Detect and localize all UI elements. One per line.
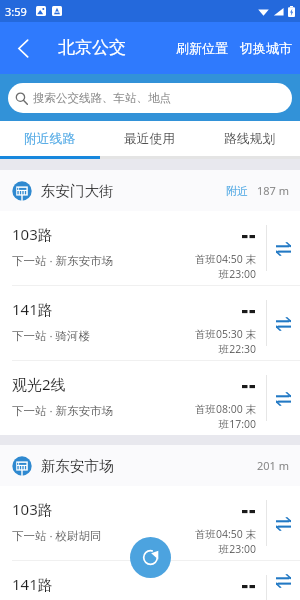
button[interactable]: 切换城市 — [234, 30, 300, 66]
staticText: 141路 — [12, 574, 53, 594]
staticText: 班22:30 — [218, 342, 256, 356]
staticText: 切换城市 — [240, 40, 292, 56]
staticText: 东安门大街 — [41, 182, 114, 200]
button[interactable]: 搜索公交线路、车站、地点 — [8, 83, 292, 113]
button[interactable]: 103路 — [0, 211, 300, 285]
button[interactable]: Switch direction — [267, 286, 300, 360]
staticText: 首班04:50 末 — [194, 527, 256, 541]
button[interactable]: 刷新位置 — [170, 30, 234, 66]
staticText: 103路 — [12, 224, 53, 244]
staticText: 附近线路 — [24, 131, 76, 147]
button[interactable]: 东安门大街 — [0, 170, 300, 211]
staticText: 首班04:50 末 — [194, 252, 256, 266]
staticText: 搜索公交线路、车站、地点 — [33, 91, 171, 105]
button[interactable]: Back — [0, 25, 46, 71]
button[interactable]: Switch direction — [267, 561, 300, 600]
staticText: 141路 — [12, 299, 53, 319]
button[interactable]: 新东安市场 — [0, 445, 300, 486]
staticText: 187 m — [257, 183, 290, 198]
staticText: 最近使用 — [124, 131, 176, 147]
button[interactable]: 103路 — [0, 486, 300, 560]
button[interactable]: Switch direction — [267, 361, 300, 435]
staticText: 班17:00 — [218, 417, 256, 431]
button[interactable]: 路线规划 — [200, 121, 300, 156]
staticText: 下一站 · 校尉胡同 — [12, 528, 102, 544]
staticText: 首班05:30 末 — [194, 327, 256, 341]
staticText: 201 m — [257, 458, 290, 473]
staticText: 班23:00 — [218, 542, 256, 556]
staticText: 下一站 · 骑河楼 — [12, 328, 91, 344]
staticText: 3:59 — [5, 4, 27, 19]
staticText: 下一站 · 新东安市场 — [12, 403, 114, 419]
button[interactable]: 最近使用 — [100, 121, 200, 156]
staticText: 首班08:00 末 — [194, 402, 256, 416]
button[interactable]: Switch direction — [267, 211, 300, 285]
staticText: 附近 — [226, 184, 248, 198]
button[interactable]: 141路 — [0, 286, 300, 360]
button[interactable]: 141路 — [0, 561, 300, 600]
staticText: 观光2线 — [12, 374, 66, 394]
button[interactable]: 附近线路 — [0, 121, 100, 156]
button[interactable]: Switch direction — [267, 486, 300, 560]
staticText: 北京公交 — [58, 37, 126, 58]
staticText: 班23:00 — [218, 267, 256, 281]
staticText: 新东安市场 — [41, 457, 114, 475]
staticText: 下一站 · 新东安市场 — [12, 253, 114, 269]
button[interactable]: Refresh — [130, 537, 171, 578]
button[interactable]: 观光2线 — [0, 361, 300, 435]
staticText: 刷新位置 — [176, 40, 228, 56]
staticText: 103路 — [12, 499, 53, 519]
staticText: 路线规划 — [224, 131, 276, 147]
